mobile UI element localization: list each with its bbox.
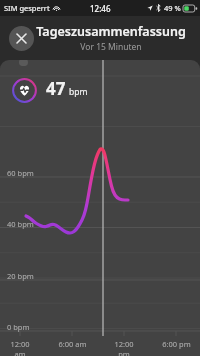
staticText: 0 bpm bbox=[7, 322, 30, 332]
staticText: 49 % bbox=[164, 3, 181, 13]
staticText: Vor 15 Minuten bbox=[80, 41, 142, 53]
staticText: 12:46 bbox=[90, 3, 111, 14]
staticText: 60 bpm bbox=[7, 168, 34, 178]
staticText: 12:00 pm bbox=[108, 339, 140, 356]
staticText: 40 bpm bbox=[7, 219, 34, 229]
staticText: bpm bbox=[69, 86, 88, 98]
button[interactable]: 47 bbox=[0, 60, 200, 356]
staticText: 12:00 am bbox=[4, 339, 36, 356]
staticText: SIM gesperrt bbox=[4, 3, 50, 13]
staticText: Tageszusammenfassung bbox=[36, 23, 186, 40]
staticText: 47 bbox=[46, 77, 66, 100]
staticText: 20 bpm bbox=[7, 271, 34, 281]
staticText: 6:00 am bbox=[58, 339, 87, 349]
button[interactable]: Schließen bbox=[9, 26, 34, 51]
staticText: 6:00 pm bbox=[162, 339, 191, 349]
